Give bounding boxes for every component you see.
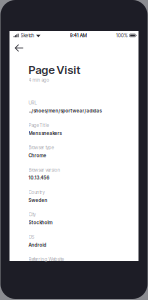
- staticText: 9:41 AM: [70, 32, 87, 38]
- staticText: Country: [29, 189, 45, 195]
- staticText: Android: [29, 242, 47, 248]
- staticText: Page Visit: [29, 63, 81, 77]
- staticText: 10.13.456: [29, 175, 50, 181]
- staticText: 4 min ago: [29, 77, 50, 83]
- staticText: URL: [29, 100, 37, 106]
- staticText: Browser type: [29, 145, 54, 150]
- staticText: City: [29, 212, 36, 217]
- staticText: .../shoes/men/sportwear/adidas: [29, 108, 102, 114]
- staticText: Mens sneakers: [29, 130, 62, 136]
- button[interactable]: Back: [9, 37, 30, 57]
- staticText: Referring Website: [29, 256, 64, 262]
- staticText: Stockholm: [29, 220, 53, 225]
- staticText: Browser version: [29, 167, 61, 173]
- staticText: OS: [29, 234, 35, 240]
- staticText: Chrome: [29, 153, 47, 158]
- staticText: Sweden: [29, 197, 48, 203]
- staticText: 100%: [116, 32, 128, 38]
- staticText: Sketch: [20, 32, 34, 38]
- staticText: Page Title: [29, 122, 49, 128]
